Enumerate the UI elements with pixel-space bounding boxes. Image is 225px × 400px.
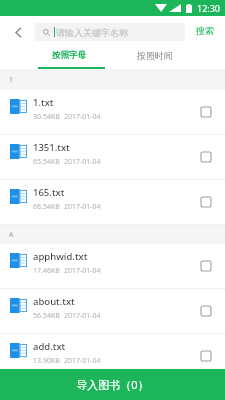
button[interactable]: Select file	[196, 301, 216, 321]
button[interactable]: 按照时间	[116, 45, 209, 69]
button[interactable]: Select file	[196, 192, 216, 212]
button[interactable]: 搜索	[185, 16, 225, 45]
staticText: 2017-01-04	[64, 157, 101, 167]
staticText: 65.54KB	[33, 157, 60, 167]
button[interactable]: about.txt	[0, 289, 225, 334]
staticText: apphwid.txt	[33, 250, 88, 263]
staticText: 1	[9, 75, 14, 85]
staticText: 68.54KB	[33, 202, 60, 212]
staticText: about.txt	[33, 295, 75, 308]
staticText: 请输入关键字名称	[56, 27, 128, 38]
staticText: 2017-01-04	[64, 311, 101, 321]
staticText: 1.txt	[33, 96, 54, 109]
button[interactable]: Select file	[196, 147, 216, 167]
staticText: 2017-01-04	[64, 202, 101, 212]
button[interactable]: 导入图书（0）	[0, 369, 225, 400]
staticText: 2017-01-04	[64, 266, 101, 276]
staticText: 搜索	[196, 25, 214, 36]
button[interactable]: 请输入关键字名称	[35, 23, 185, 41]
staticText: 12:30	[197, 2, 221, 14]
staticText: A	[9, 230, 14, 240]
button[interactable]: add.txt	[0, 334, 225, 379]
button[interactable]: Back	[0, 16, 34, 45]
staticText: 导入图书（0）	[76, 377, 149, 392]
button[interactable]: Select file	[196, 346, 216, 366]
staticText: 2017-01-04	[64, 356, 101, 366]
staticText: add.txt	[33, 340, 66, 353]
button[interactable]: 按照字母	[23, 45, 116, 69]
staticText: 17.46KB	[33, 266, 60, 276]
staticText: 按照时间	[137, 50, 173, 61]
staticText: 165.txt	[33, 186, 65, 199]
button[interactable]: Select file	[196, 102, 216, 122]
button[interactable]: 165.txt	[0, 180, 225, 225]
button[interactable]: 1351.txt	[0, 135, 225, 180]
staticText: 30.54KB	[33, 112, 60, 122]
button[interactable]: 1.txt	[0, 90, 225, 135]
button[interactable]: Select file	[196, 256, 216, 276]
staticText: 按照字母	[52, 50, 86, 61]
button[interactable]: apphwid.txt	[0, 244, 225, 289]
staticText: 1351.txt	[33, 141, 70, 154]
staticText: 13.90KB	[33, 356, 60, 366]
staticText: 56.54KB	[33, 311, 60, 321]
staticText: 2017-01-04	[64, 112, 101, 122]
